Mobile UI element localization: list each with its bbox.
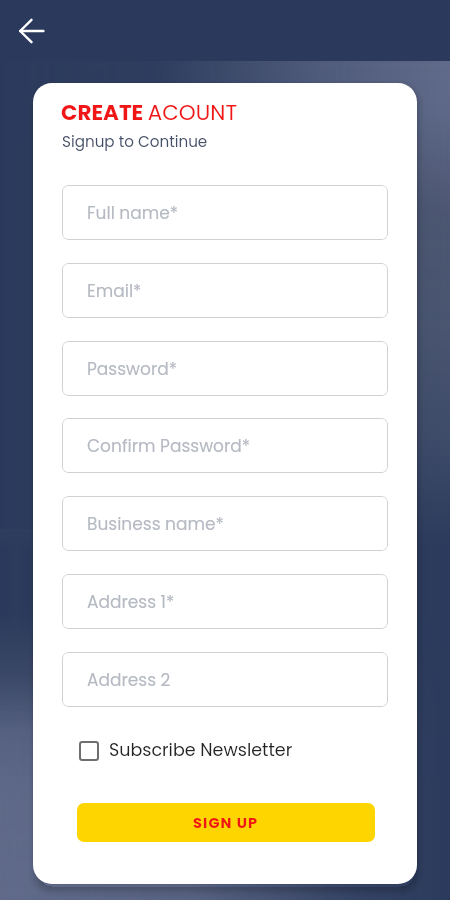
- button[interactable]: Address 2: [62, 652, 388, 707]
- staticText: Subscribe Newsletter: [109, 738, 293, 763]
- staticText: Email*: [87, 279, 142, 303]
- staticText: Password*: [87, 357, 177, 381]
- button[interactable]: Back: [8, 7, 56, 55]
- button[interactable]: Subscribe Newsletter: [79, 738, 293, 763]
- staticText: Address 1*: [87, 590, 175, 614]
- staticText: SIGN UP: [193, 813, 259, 833]
- staticText: CREATE ACOUNT: [61, 97, 238, 127]
- button[interactable]: Address 1*: [62, 574, 388, 629]
- staticText: Signup to Continue: [62, 131, 208, 152]
- button[interactable]: Password*: [62, 341, 388, 396]
- button[interactable]: Full name*: [62, 185, 388, 240]
- button[interactable]: Business name*: [62, 496, 388, 551]
- button[interactable]: SIGN UP: [77, 803, 375, 842]
- button[interactable]: Email*: [62, 263, 388, 318]
- staticText: Business name*: [87, 512, 224, 536]
- staticText: Confirm Password*: [87, 434, 251, 458]
- staticText: Address 2: [87, 668, 171, 692]
- button[interactable]: Confirm Password*: [62, 418, 388, 473]
- staticText: Full name*: [87, 201, 179, 225]
